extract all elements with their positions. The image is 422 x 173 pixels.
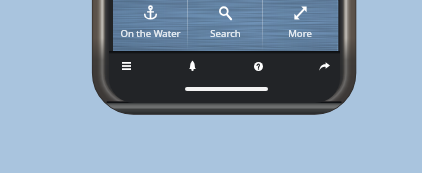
button[interactable]: Notifications bbox=[182, 56, 202, 76]
button[interactable]: Menu bbox=[116, 56, 136, 76]
staticText: Search bbox=[210, 27, 241, 40]
button[interactable]: Help bbox=[248, 56, 268, 76]
button[interactable]: On the Water bbox=[113, 0, 187, 51]
button[interactable]: More bbox=[263, 0, 337, 51]
button[interactable]: Share bbox=[314, 56, 334, 76]
staticText: More bbox=[288, 27, 312, 40]
button[interactable]: Search bbox=[188, 0, 262, 51]
staticText: On the Water bbox=[120, 27, 181, 40]
